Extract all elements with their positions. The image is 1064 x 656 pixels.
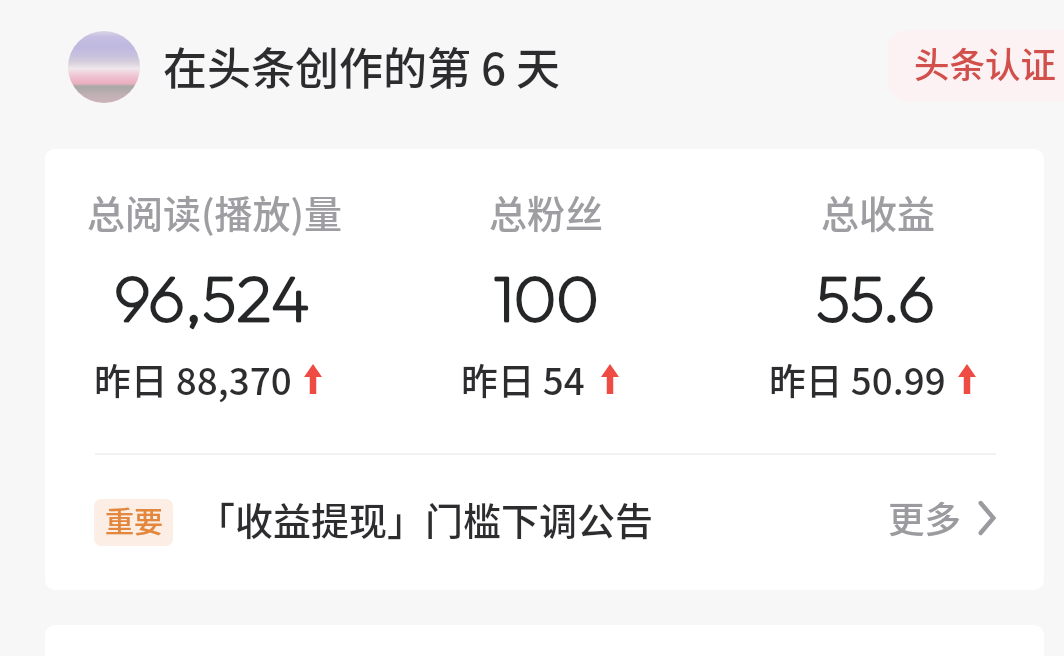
staticText: 昨日 54 (461, 352, 585, 405)
staticText: 总粉丝 (489, 184, 604, 239)
staticText: 在头条创作的第 6 天 (163, 34, 560, 98)
staticText: 100 (493, 256, 599, 337)
button[interactable]: 重要 (45, 455, 1044, 590)
staticText: 总阅读(播放)量 (87, 184, 343, 239)
staticText: 「收益提现」门槛下调公告 (197, 491, 654, 546)
staticText: 头条认证 (914, 37, 1057, 88)
other: Increase versus yesterday (304, 364, 322, 394)
staticText: 昨日 88,370 (94, 352, 292, 405)
staticText: 100 (493, 256, 599, 337)
staticText: 55.6 (816, 256, 935, 337)
staticText: 96,524 (114, 256, 310, 337)
button[interactable]: Profile avatar (68, 31, 140, 103)
staticText: 96,524 (114, 256, 310, 337)
other: Increase versus yesterday (601, 364, 619, 394)
staticText: 重要 (105, 499, 164, 541)
other: More announcements (977, 501, 997, 535)
other: Increase versus yesterday (958, 364, 976, 394)
staticText: 55.6 (816, 256, 935, 337)
staticText: 昨日 50.99 (769, 352, 946, 405)
staticText: 总收益 (821, 184, 936, 239)
button[interactable]: 头条认证 (888, 30, 1064, 101)
staticText: 更多 (888, 491, 961, 544)
